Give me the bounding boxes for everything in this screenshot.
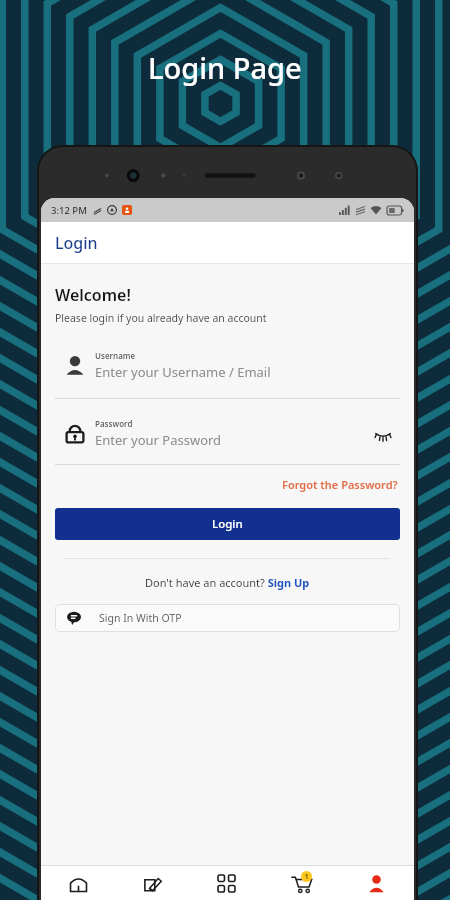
- button[interactable]: Profile: [339, 866, 414, 900]
- staticText: Forgot the Password?: [282, 477, 398, 492]
- staticText: Don't have an account? Sign Up: [145, 575, 310, 590]
- staticText: Welcome!: [55, 284, 131, 306]
- button[interactable]: Login: [55, 508, 400, 540]
- button[interactable]: Compose: [115, 866, 189, 900]
- button[interactable]: Password: [55, 417, 400, 450]
- staticText: Login: [212, 516, 243, 532]
- button[interactable]: Show password: [372, 423, 394, 445]
- staticText: 3:12 PM: [51, 204, 87, 217]
- button[interactable]: Cart: [264, 866, 339, 900]
- button[interactable]: Forgot the Password?: [280, 475, 400, 494]
- staticText: Please login if you already have an acco…: [55, 311, 267, 325]
- staticText: Login: [55, 232, 98, 254]
- button[interactable]: Sign In With OTP: [55, 604, 400, 632]
- staticText: Password: [95, 418, 133, 429]
- button[interactable]: Don't have an account? Sign Up: [143, 573, 312, 592]
- staticText: Sign In With OTP: [99, 611, 182, 625]
- staticText: Username: [95, 350, 136, 361]
- button[interactable]: Categories: [189, 866, 264, 900]
- button[interactable]: Username: [55, 349, 400, 382]
- staticText: 1: [304, 872, 309, 882]
- staticText: Enter your Username / Email: [95, 363, 271, 381]
- staticText: Login Page: [148, 48, 302, 87]
- button[interactable]: Home: [41, 866, 115, 900]
- staticText: Enter your Password: [95, 431, 222, 449]
